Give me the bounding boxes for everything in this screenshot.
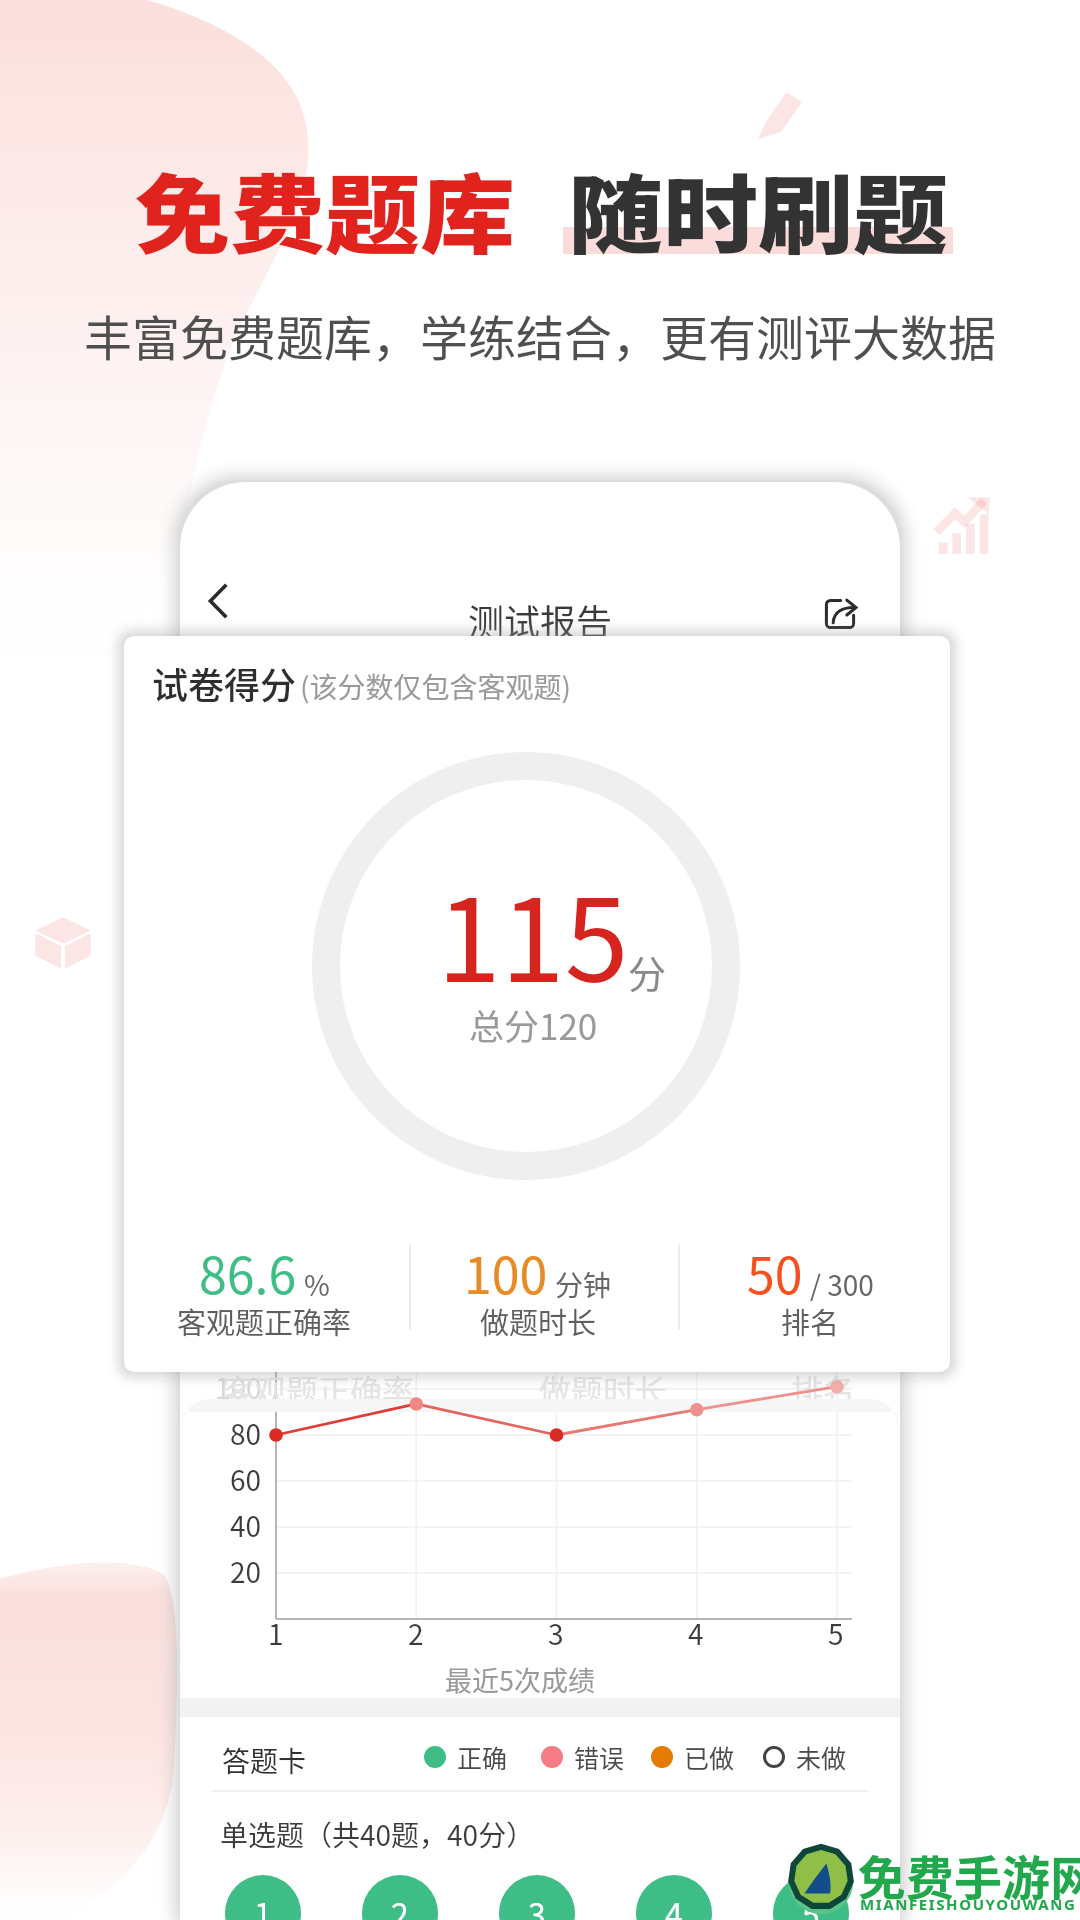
- button[interactable]: 已做: [651, 1739, 735, 1775]
- staticText: %: [304, 1264, 330, 1305]
- staticText: 错误: [574, 1739, 625, 1775]
- staticText: 2: [391, 1890, 409, 1920]
- staticText: 总分120: [469, 999, 598, 1050]
- staticText: 40: [230, 1505, 262, 1546]
- staticText: 试卷得分: [152, 657, 297, 709]
- staticText: 50: [747, 1236, 803, 1308]
- staticText: 60: [230, 1459, 262, 1500]
- staticText: 客观题正确率: [222, 1366, 415, 1412]
- button[interactable]: 正确: [424, 1739, 508, 1775]
- staticText: 未做: [796, 1739, 847, 1775]
- staticText: 5: [828, 1613, 844, 1654]
- staticText: 3: [548, 1613, 564, 1654]
- button[interactable]: Back: [190, 570, 252, 632]
- button[interactable]: 4: [636, 1875, 712, 1920]
- staticText: MIANFEISHOUYOUWANG: [860, 1894, 1077, 1914]
- button[interactable]: 3: [499, 1875, 575, 1920]
- staticText: / 300: [810, 1264, 874, 1305]
- button[interactable]: 错误: [541, 1739, 625, 1775]
- staticText: 测试报告: [468, 594, 613, 646]
- staticText: 4: [665, 1890, 683, 1920]
- button[interactable]: Share: [814, 588, 866, 640]
- staticText: 1: [254, 1890, 272, 1920]
- staticText: 20: [230, 1551, 262, 1592]
- button[interactable]: 1: [225, 1875, 301, 1920]
- staticText: (该分数仅包含客观题): [300, 666, 571, 707]
- staticText: 115: [437, 849, 629, 1016]
- staticText: 80: [230, 1413, 262, 1454]
- staticText: 做题时长: [539, 1366, 668, 1412]
- staticText: 排名: [791, 1366, 856, 1412]
- staticText: 丰富免费题库，学练结合，更有测评大数据: [84, 300, 997, 370]
- staticText: 100: [464, 1236, 548, 1308]
- staticText: 客观题正确率: [177, 1300, 352, 1342]
- staticText: 免费题库: [135, 146, 516, 272]
- staticText: 5: [802, 1890, 820, 1920]
- staticText: 2: [408, 1613, 424, 1654]
- staticText: 做题时长: [480, 1300, 597, 1342]
- staticText: 4: [688, 1613, 704, 1654]
- staticText: 免费手游网: [858, 1840, 1080, 1910]
- staticText: 已做: [684, 1739, 735, 1775]
- staticText: 排名: [781, 1300, 840, 1342]
- staticText: 最近5次成绩: [445, 1660, 595, 1699]
- button[interactable]: 2: [362, 1875, 438, 1920]
- staticText: 随时刷题: [568, 146, 949, 272]
- staticText: 86.6: [199, 1236, 297, 1308]
- staticText: 答题卡: [222, 1740, 307, 1781]
- staticText: 分: [628, 944, 667, 999]
- button[interactable]: 5: [773, 1875, 849, 1920]
- staticText: 正确: [457, 1739, 508, 1775]
- button[interactable]: 未做: [763, 1739, 847, 1775]
- staticText: 分钟: [555, 1264, 612, 1305]
- staticText: 单选题（共40题，40分）: [220, 1814, 535, 1855]
- staticText: 100: [215, 1367, 262, 1408]
- staticText: 3: [528, 1890, 546, 1920]
- staticText: 1: [268, 1613, 284, 1654]
